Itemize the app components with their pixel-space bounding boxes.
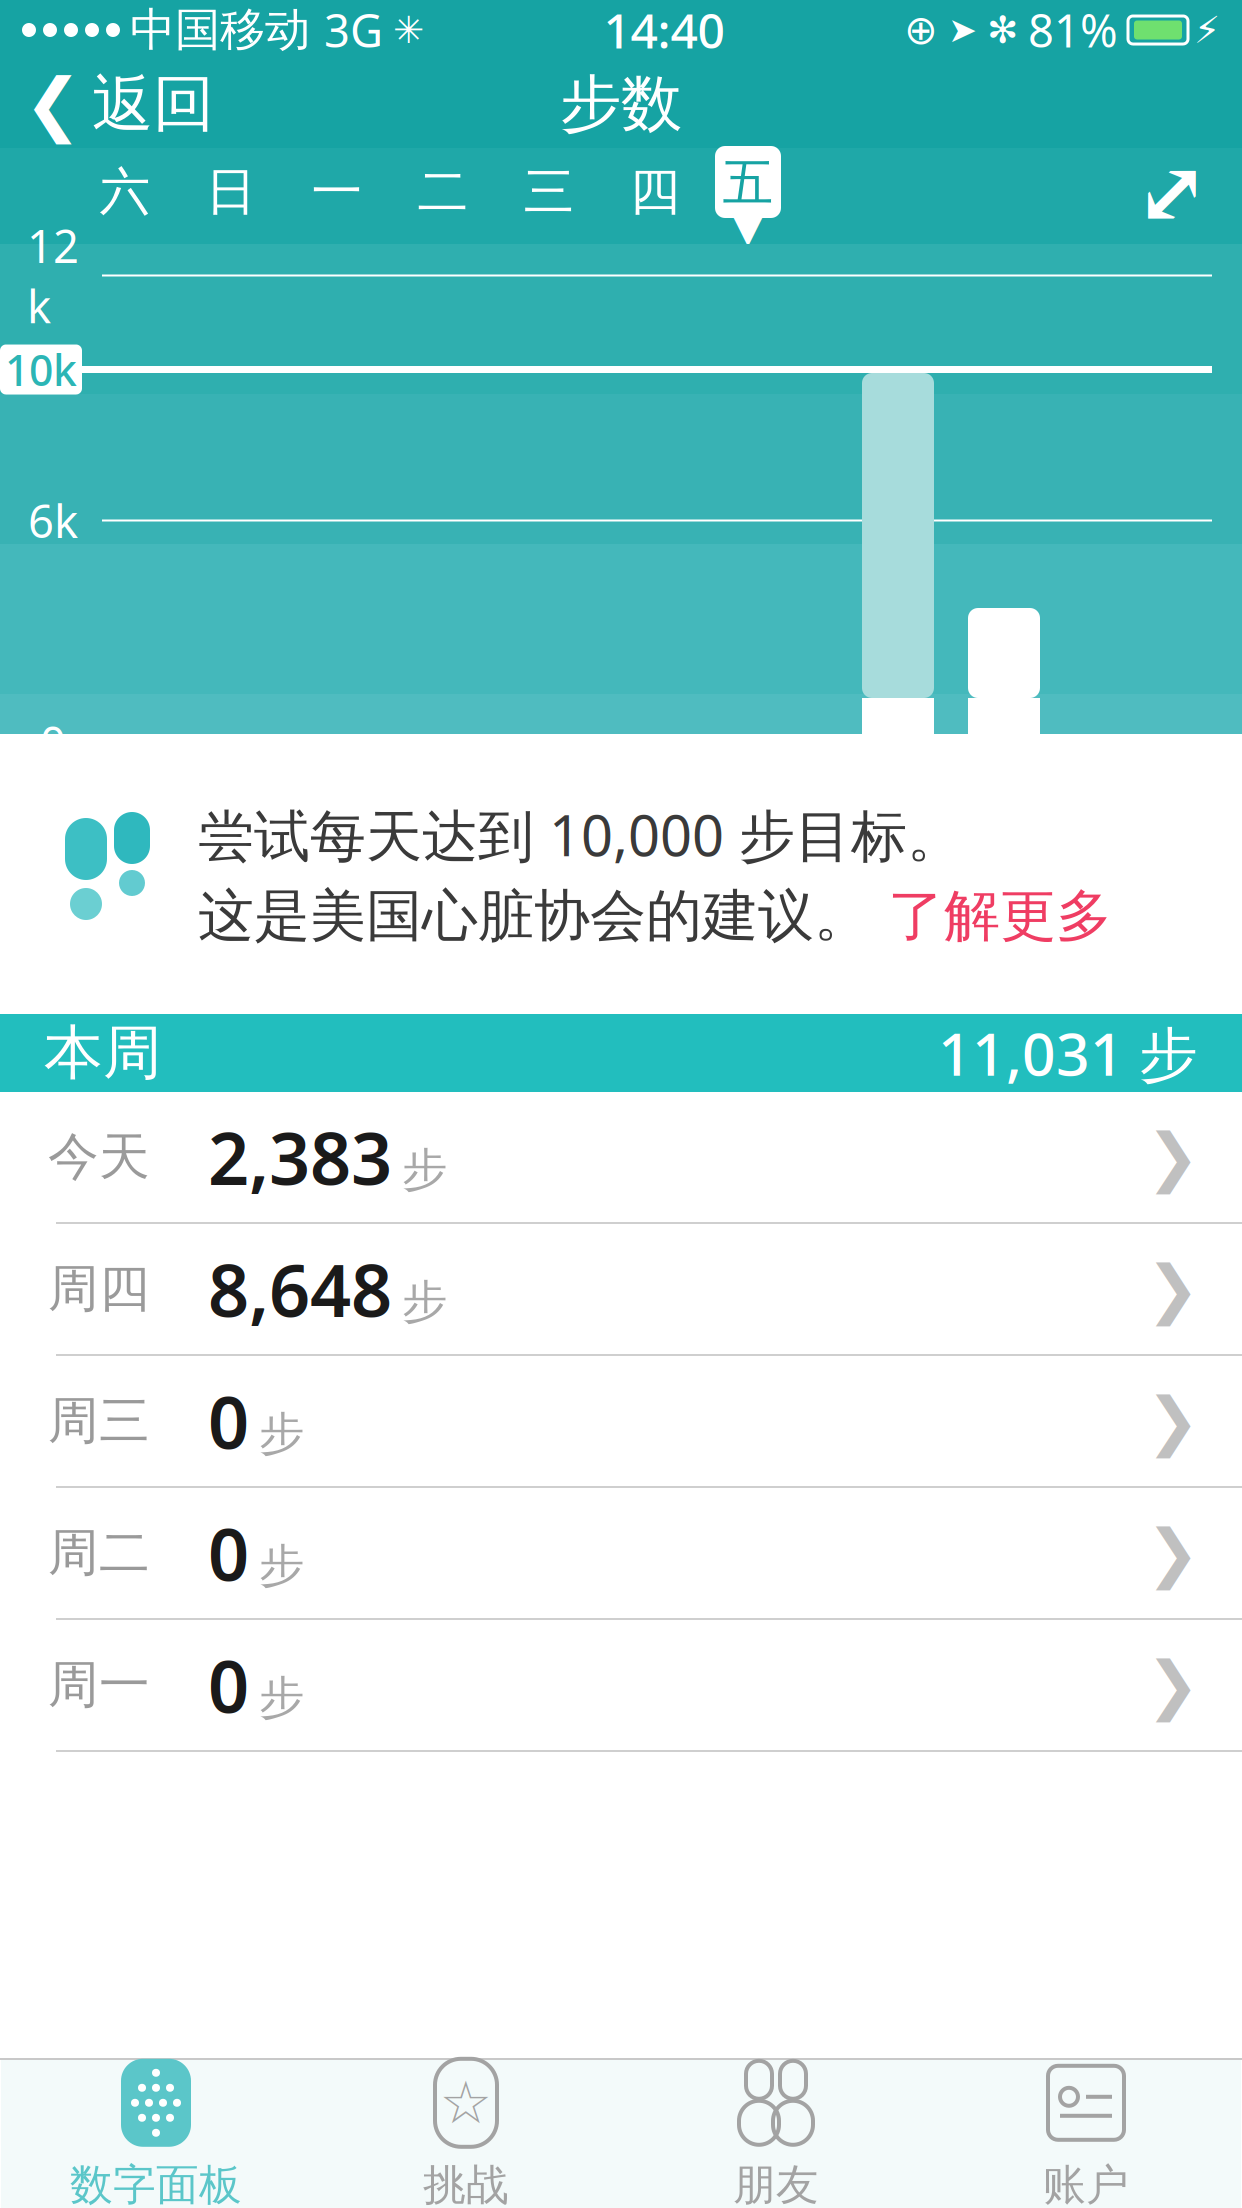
staticText: 账户 (1043, 2159, 1129, 2208)
button[interactable]: 账户 (931, 2059, 1241, 2208)
button[interactable]: 周三 (0, 1356, 1242, 1488)
staticText: 步 (259, 1538, 304, 1594)
staticText: 周四 (48, 1258, 150, 1320)
staticText: 朋友 (733, 2159, 819, 2208)
button[interactable]: 周二 (0, 1488, 1242, 1620)
button[interactable]: 周四 (0, 1224, 1242, 1356)
staticText: 周一 (48, 1654, 150, 1716)
staticText: ✳︎ (393, 9, 424, 51)
staticText: 中国移动 (130, 2, 310, 58)
staticText: ❯ (1146, 1517, 1200, 1589)
staticText: 11,031 步 (938, 1014, 1198, 1092)
staticText: 6k (28, 490, 78, 551)
staticText: ➤ (948, 10, 977, 50)
button[interactable]: 了解更多 (888, 882, 1112, 951)
staticText: ❯ (1146, 1121, 1200, 1193)
staticText: 日 (205, 161, 256, 223)
button[interactable]: 今天 (0, 1092, 1242, 1224)
button[interactable]: 三 (496, 144, 602, 240)
staticText: 尝试每天达到 10,000 步目标。 (198, 797, 963, 872)
staticText: 0 (40, 712, 66, 773)
staticText: 了解更多 (888, 882, 1112, 951)
staticText: 三 (523, 161, 574, 223)
button[interactable]: 日 (178, 144, 284, 240)
staticText: 0 (208, 1373, 249, 1469)
staticText: ❯ (1146, 1253, 1200, 1325)
staticText: 四 (629, 161, 680, 223)
staticText: ❮ (24, 65, 82, 143)
staticText: 六 (99, 161, 150, 223)
staticText: 返回 (92, 66, 214, 142)
staticText: 0 (208, 1505, 249, 1601)
staticText: ✻ (987, 9, 1018, 51)
staticText: 挑战 (423, 2159, 509, 2208)
staticText: 步 (402, 1142, 447, 1198)
staticText: ▼ (732, 205, 763, 251)
button[interactable]: ☆ (311, 2059, 621, 2208)
staticText: 二 (417, 161, 468, 223)
staticText: ❯ (1146, 1385, 1200, 1457)
staticText: ☆ (439, 2069, 492, 2136)
staticText: 五 (722, 152, 773, 214)
staticText: 81% (1028, 0, 1118, 60)
staticText: 步 (402, 1274, 447, 1330)
staticText: ⊕ (904, 7, 938, 53)
staticText: 数字面板 (70, 2159, 242, 2208)
staticText: 0 (208, 1637, 249, 1733)
button[interactable]: 六 (72, 144, 178, 240)
staticText: 14:40 (603, 0, 724, 62)
staticText: 一 (311, 161, 362, 223)
button[interactable]: Expand chart (1122, 144, 1222, 240)
staticText: 今天 (48, 1126, 150, 1188)
staticText: 3G (324, 0, 383, 60)
button[interactable]: 周一 (0, 1620, 1242, 1752)
staticText: 12k (27, 215, 79, 336)
staticText: 周三 (48, 1390, 150, 1452)
staticText: 周二 (48, 1522, 150, 1584)
button[interactable]: 四 (602, 144, 708, 240)
staticText: 本周 (44, 1017, 162, 1089)
staticText: 步 (259, 1670, 304, 1726)
staticText: 这是美国心脏协会的建议。 (198, 882, 870, 951)
staticText: 8,648 (208, 1241, 392, 1337)
button[interactable]: 朋友 (621, 2059, 931, 2208)
staticText: ❯ (1146, 1649, 1200, 1721)
staticText: 步数 (560, 66, 682, 142)
button[interactable]: ❮ (0, 60, 238, 148)
button[interactable]: ▼ (708, 144, 788, 240)
staticText: 10k (5, 341, 77, 398)
staticText: ⚡︎ (1194, 9, 1220, 51)
staticText: 步 (259, 1406, 304, 1462)
button[interactable]: 二 (390, 144, 496, 240)
button[interactable]: 数字面板 (1, 2059, 311, 2208)
staticText: 2,383 (208, 1109, 392, 1205)
button[interactable]: 一 (284, 144, 390, 240)
staticText: ⤢ (1135, 142, 1209, 242)
